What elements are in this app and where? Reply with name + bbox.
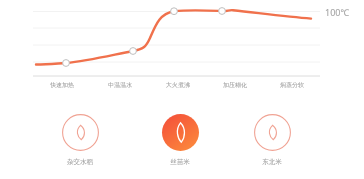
button[interactable]: 大火煮沸 [149,81,206,89]
staticText: 快速加热 [50,81,74,89]
button[interactable]: 加压糊化 [206,81,263,89]
staticText: 100℃ [325,6,350,18]
staticText: 焖蒸分软 [280,81,304,89]
button[interactable]: 东北米 [242,114,302,166]
button[interactable]: 杂交水稻 [50,114,110,166]
staticText: 东北米 [242,158,302,166]
button[interactable]: 丝苗米 [150,114,210,166]
button[interactable]: 中温温水 [91,81,149,89]
staticText: 大火煮沸 [166,81,190,89]
button[interactable]: 焖蒸分软 [263,81,320,89]
staticText: 加压糊化 [223,81,247,89]
staticText: 中温温水 [108,81,132,89]
staticText: 杂交水稻 [50,158,110,166]
staticText: 丝苗米 [150,158,210,166]
button[interactable]: 快速加热 [33,81,91,89]
